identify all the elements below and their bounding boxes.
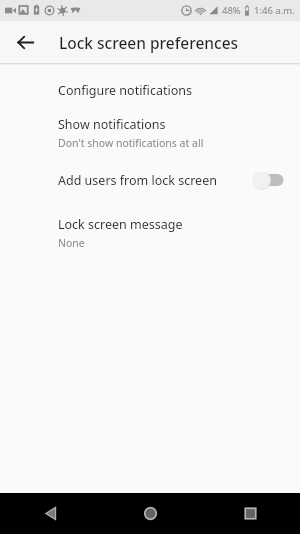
- button[interactable]: Add users from lock screen: [0, 156, 300, 204]
- button[interactable]: Back: [0, 493, 100, 534]
- staticText: Configure notifications: [58, 82, 192, 99]
- staticText: Show notifications: [58, 116, 166, 133]
- button[interactable]: Lock screen message: [0, 204, 300, 256]
- staticText: None: [58, 236, 85, 250]
- staticText: Lock screen preferences: [59, 32, 239, 53]
- staticText: Add users from lock screen: [58, 172, 217, 189]
- button[interactable]: Show notifications: [0, 104, 300, 156]
- staticText: Lock screen message: [58, 216, 183, 233]
- staticText: 1:46 a.m.: [254, 4, 295, 17]
- staticText: Don't show notifications at all: [58, 136, 204, 150]
- button[interactable]: Recents: [200, 493, 300, 534]
- button[interactable]: Home: [100, 493, 200, 534]
- staticText: 48%: [222, 4, 241, 17]
- button[interactable]: Back: [8, 25, 42, 59]
- button[interactable]: Configure notifications: [0, 76, 300, 104]
